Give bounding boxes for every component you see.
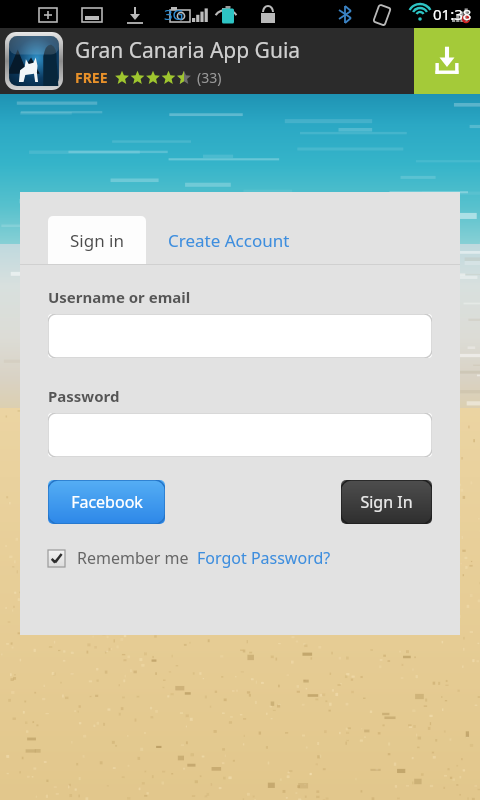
staticText: Username or email [48,287,191,307]
button[interactable]: Sign in [48,216,146,264]
staticText: Facebook [71,491,143,513]
button[interactable]: Gran Canaria App Guia [0,28,480,94]
button[interactable]: Install [414,28,480,94]
staticText: Create Account [168,229,290,252]
staticText: 3G [164,4,184,24]
button[interactable]: Sign In [341,480,432,524]
button[interactable]: Remember me [77,547,189,569]
staticText: FREE [75,68,108,87]
button[interactable] [48,314,432,358]
staticText: Sign in [70,229,124,252]
staticText: (33) [197,68,222,87]
staticText: Password [48,386,120,406]
staticText: Gran Canaria App Guia [75,36,301,65]
button[interactable]: Create Account [146,216,312,264]
button[interactable] [48,413,432,457]
staticText: Sign In [360,491,413,513]
staticText: 01:38 [433,4,472,24]
button[interactable]: Forgot Password? [197,547,331,569]
button[interactable]: Facebook [48,480,165,524]
button[interactable]: Remember me checkbox [48,550,65,567]
